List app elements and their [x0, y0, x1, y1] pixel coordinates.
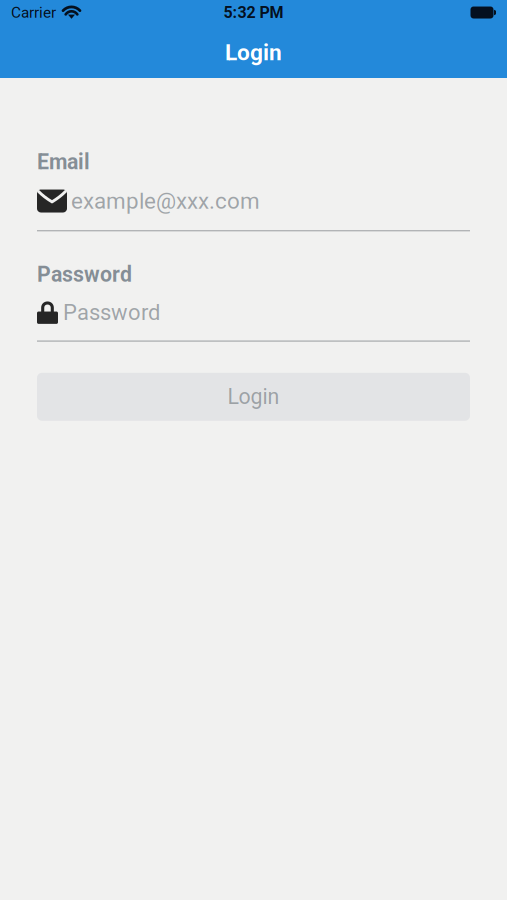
- button[interactable]: Password: [37, 300, 470, 342]
- staticText: Login: [227, 384, 279, 409]
- staticText: Carrier: [11, 3, 56, 21]
- staticText: Email: [37, 149, 90, 174]
- staticText: 5:32 PM: [223, 3, 283, 22]
- staticText: Login: [225, 39, 282, 66]
- button[interactable]: Login: [37, 373, 470, 421]
- button[interactable]: example@xxx.com: [37, 189, 470, 231]
- staticText: example@xxx.com: [71, 188, 260, 214]
- staticText: Password: [63, 299, 160, 325]
- staticText: Password: [37, 262, 132, 287]
